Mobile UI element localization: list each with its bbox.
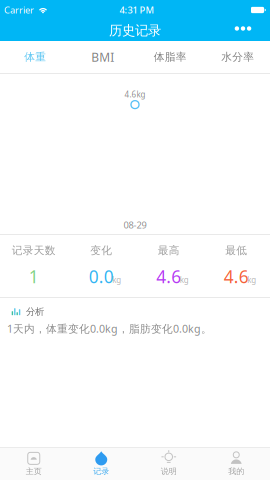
staticText: 最低 (225, 244, 247, 257)
staticText: 最高 (158, 244, 180, 257)
staticText: 4.6 (224, 265, 249, 288)
button[interactable]: 我的 (202, 447, 270, 480)
button[interactable]: 主页 (0, 447, 67, 480)
button[interactable]: 水分率 (204, 41, 270, 73)
staticText: 记录天数 (12, 244, 56, 257)
staticText: 1天内，体重变化0.0kg，脂肪变化0.0kg。 (7, 321, 212, 336)
staticText: kg (112, 275, 121, 285)
staticText: 1 (29, 265, 39, 288)
staticText: 体脂率 (154, 50, 187, 63)
staticText: BMI (91, 49, 114, 65)
staticText: kg (247, 275, 256, 285)
staticText: 4:31 PM (119, 4, 154, 16)
staticText: 4.6kg (124, 89, 145, 100)
button[interactable]: 说明 (135, 447, 202, 480)
button[interactable]: 记录 (67, 447, 135, 480)
staticText: 0.0 (89, 265, 114, 288)
button[interactable]: More options (225, 20, 261, 41)
button[interactable]: BMI (69, 41, 136, 73)
button[interactable]: 体重 (1, 41, 69, 73)
staticText: 记录 (93, 466, 109, 476)
staticText: 说明 (161, 466, 177, 476)
staticText: 主页 (26, 466, 42, 476)
staticText: 08-29 (123, 219, 146, 231)
staticText: 体重 (24, 50, 46, 63)
staticText: 我的 (228, 466, 244, 476)
staticText: 历史记录 (109, 22, 161, 39)
button[interactable]: 体脂率 (136, 41, 204, 73)
staticText: Carrier (4, 4, 34, 16)
staticText: 水分率 (221, 50, 254, 63)
staticText: kg (180, 275, 189, 285)
staticText: 分析 (26, 306, 44, 317)
staticText: 4.6 (156, 265, 181, 288)
staticText: 变化 (90, 244, 112, 257)
